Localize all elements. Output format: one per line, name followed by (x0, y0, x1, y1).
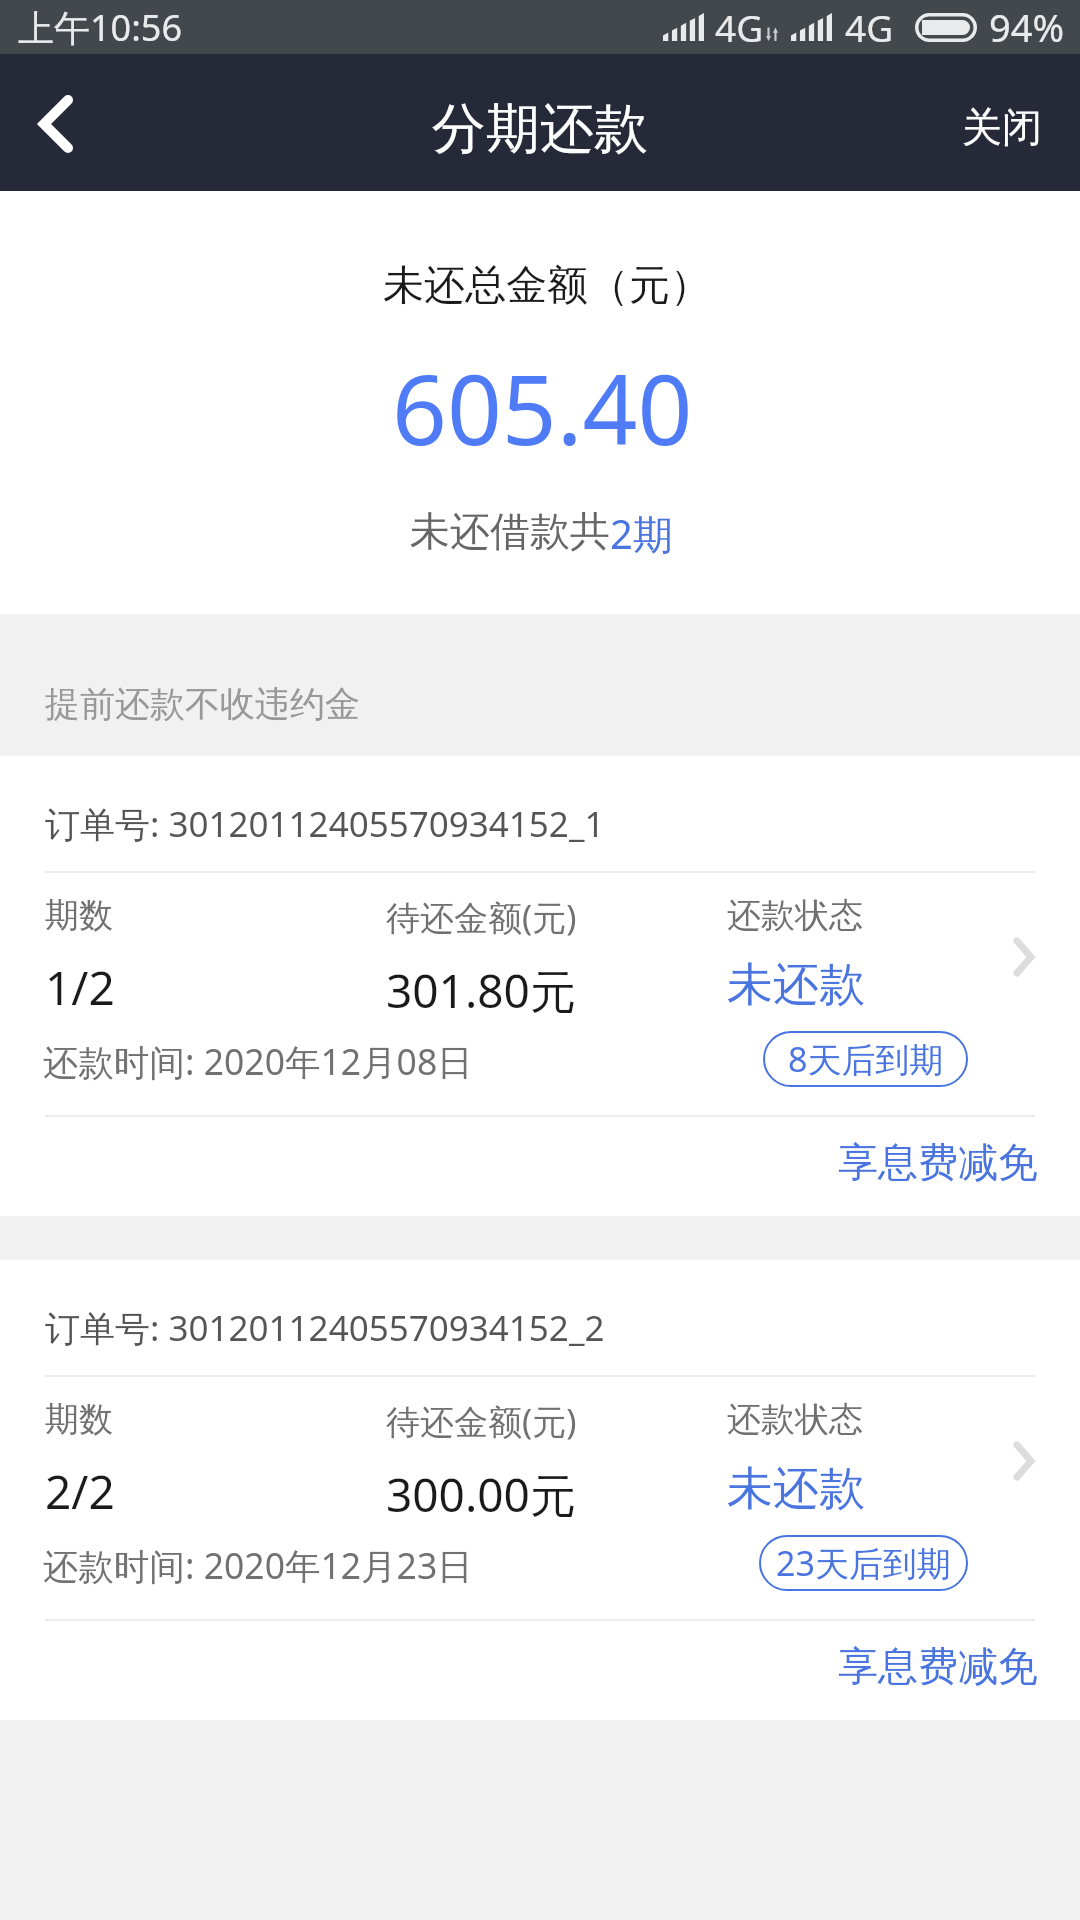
button[interactable]: 享息费减免 (818, 1636, 1080, 1706)
button[interactable]: Back (0, 54, 110, 191)
button[interactable]: 关闭 (932, 54, 1080, 191)
staticText: 分期还款 (432, 95, 648, 163)
staticText: 还款状态 (727, 894, 863, 937)
button[interactable]: 享息费减免 (818, 1132, 1080, 1202)
staticText: 未还款 (727, 956, 865, 1014)
staticText: 订单号: 30120112405570934152_1 (45, 800, 605, 848)
staticText: 23天后到期 (776, 1540, 951, 1586)
staticText: 期数 (45, 894, 113, 937)
staticText: 2/2 (45, 1460, 115, 1523)
staticText: 待还金额(元) (386, 1398, 577, 1444)
staticText: 301.80元 (386, 959, 576, 1022)
staticText: 2期 (610, 506, 673, 561)
staticText: 未还总金额（元） (383, 260, 711, 312)
button[interactable]: 期数 (0, 1377, 1080, 1619)
staticText: 94% (989, 1, 1065, 53)
staticText: 605.40 (392, 342, 693, 473)
staticText: 还款时间: 2020年12月08日 (43, 1037, 473, 1085)
staticText: 提前还款不收违约金 (45, 682, 360, 726)
staticText: 未还款 (727, 1460, 865, 1518)
staticText: 期数 (45, 1398, 113, 1441)
staticText: 1/2 (45, 956, 115, 1019)
staticText: 4G (845, 2, 894, 52)
staticText: 上午10:56 (18, 3, 183, 52)
staticText: 未还借款共 (410, 506, 610, 556)
staticText: 4G (715, 2, 764, 52)
staticText: 还款状态 (727, 1398, 863, 1441)
staticText: 300.00元 (386, 1463, 576, 1526)
staticText: 订单号: 30120112405570934152_2 (45, 1304, 605, 1352)
staticText: 还款时间: 2020年12月23日 (43, 1541, 473, 1589)
button[interactable]: 期数 (0, 873, 1080, 1115)
staticText: 享息费减免 (838, 1137, 1038, 1187)
staticText: 享息费减免 (838, 1641, 1038, 1691)
staticText: 8天后到期 (788, 1036, 944, 1082)
staticText: 关闭 (962, 102, 1042, 152)
staticText: 待还金额(元) (386, 894, 577, 940)
